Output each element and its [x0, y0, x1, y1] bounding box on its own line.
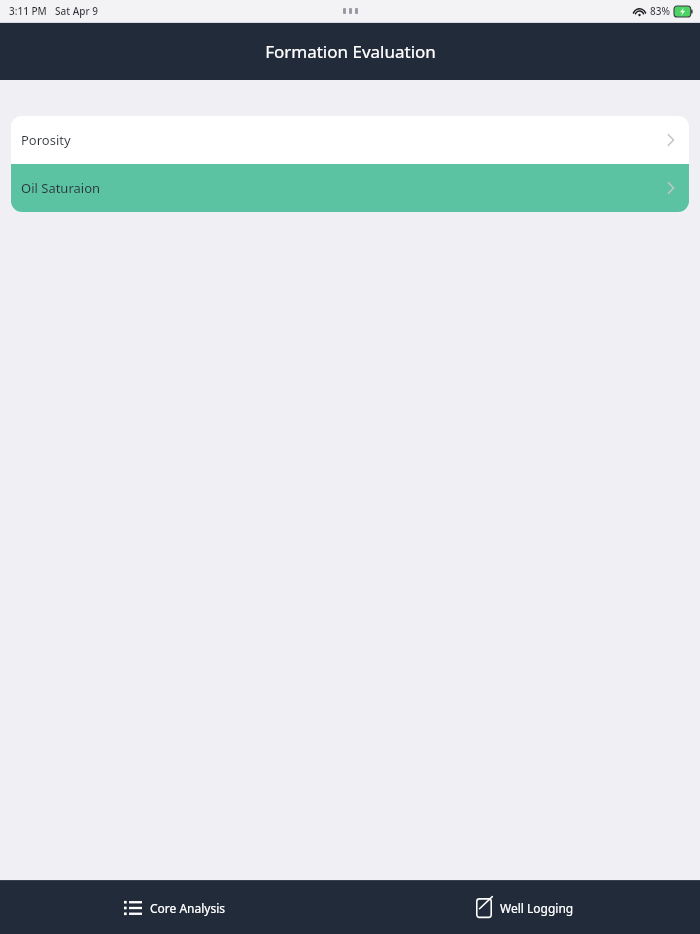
staticText: 83%	[650, 4, 670, 18]
staticText: Porosity	[21, 131, 71, 149]
staticText: Well Logging	[500, 900, 574, 916]
staticText: Oil Saturaion	[21, 179, 101, 197]
button[interactable]: Porosity	[11, 116, 689, 164]
other: Well Logging	[476, 897, 492, 918]
button[interactable]: Oil Saturaion	[11, 164, 689, 212]
button[interactable]: Well Logging	[466, 891, 584, 924]
other: Core Analysis	[124, 899, 142, 917]
staticText: Core Analysis	[150, 900, 226, 916]
staticText: Sat Apr 9	[55, 4, 98, 18]
staticText: Formation Evaluation	[265, 40, 436, 63]
button[interactable]: Core Analysis	[114, 893, 236, 923]
staticText: 3:11 PM	[9, 4, 47, 18]
